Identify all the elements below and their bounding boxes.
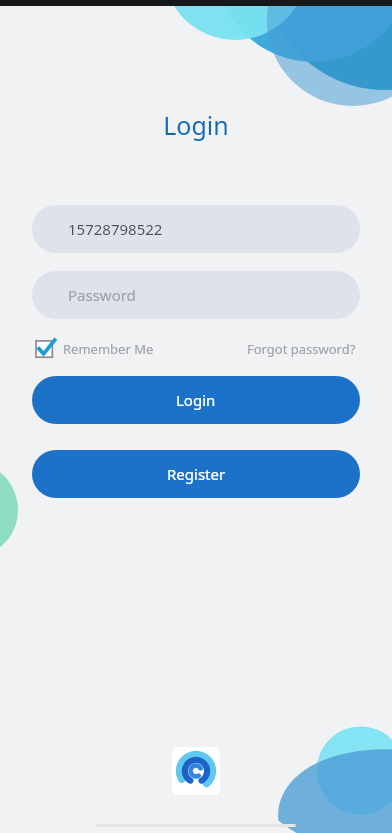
staticText: Register xyxy=(167,464,226,484)
button[interactable]: Login xyxy=(32,376,360,424)
staticText: Password xyxy=(68,285,136,305)
button[interactable]: Forgot password? xyxy=(247,340,356,358)
button[interactable]: 15728798522 xyxy=(32,205,360,253)
button[interactable]: Register xyxy=(32,450,360,498)
other: App logo xyxy=(172,747,220,795)
button[interactable]: Remember Me xyxy=(36,339,154,358)
staticText: Remember Me xyxy=(63,340,154,358)
staticText: Login xyxy=(0,108,392,142)
staticText: Forgot password? xyxy=(247,340,356,358)
staticText: Login xyxy=(176,390,216,410)
button[interactable]: Password xyxy=(32,271,360,319)
staticText: 15728798522 xyxy=(68,219,163,239)
